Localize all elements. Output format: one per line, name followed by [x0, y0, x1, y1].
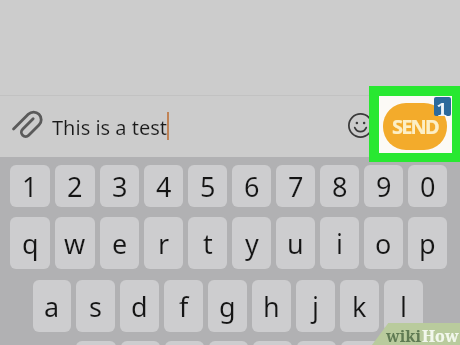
staticText: 0 — [420, 168, 436, 205]
staticText: y — [245, 225, 259, 262]
staticText: j — [312, 288, 319, 325]
staticText: 2 — [67, 168, 83, 205]
button[interactable]: c — [165, 341, 204, 345]
button[interactable]: 1 — [10, 165, 50, 207]
button[interactable]: 3 — [100, 165, 139, 207]
staticText: 9 — [376, 168, 392, 205]
button[interactable]: n — [297, 341, 336, 345]
staticText: w — [64, 225, 86, 262]
staticText: 7 — [288, 168, 304, 205]
button[interactable]: q — [10, 217, 50, 269]
button[interactable]: 8 — [320, 165, 359, 207]
button[interactable]: t — [188, 217, 227, 269]
button[interactable]: v — [209, 341, 248, 345]
staticText: 1 — [437, 97, 448, 116]
staticText: SEND — [392, 113, 438, 140]
staticText: s — [89, 288, 102, 325]
button[interactable]: x — [121, 341, 160, 345]
staticText: 5 — [200, 168, 216, 205]
staticText: This is a test — [52, 114, 168, 141]
button[interactable]: k — [340, 280, 379, 332]
button[interactable]: h — [252, 280, 291, 332]
button[interactable]: 5 — [188, 165, 227, 207]
staticText: 6 — [244, 168, 260, 205]
staticText: t — [203, 225, 213, 262]
staticText: 4 — [156, 168, 172, 205]
button[interactable]: o — [364, 217, 403, 269]
button[interactable]: f — [164, 280, 203, 332]
button[interactable]: g — [208, 280, 247, 332]
staticText: q — [22, 225, 39, 262]
staticText: 3 — [112, 168, 128, 205]
button[interactable]: l — [384, 280, 423, 332]
button[interactable]: 9 — [364, 165, 403, 207]
staticText: 8 — [332, 168, 348, 205]
button[interactable]: Attach file — [14, 108, 47, 141]
staticText: g — [219, 288, 236, 325]
button[interactable]: 7 — [276, 165, 315, 207]
button[interactable]: m — [341, 341, 380, 345]
staticText: f — [179, 288, 189, 325]
staticText: p — [419, 225, 436, 262]
button[interactable]: a — [33, 280, 71, 332]
button[interactable]: s — [76, 280, 115, 332]
button[interactable]: d — [120, 280, 159, 332]
staticText: l — [400, 288, 407, 325]
button[interactable]: b — [253, 341, 292, 345]
button[interactable]: u — [276, 217, 315, 269]
button[interactable]: SEND — [383, 103, 447, 150]
button[interactable]: 0 — [408, 165, 447, 207]
staticText: r — [158, 225, 170, 262]
button[interactable]: y — [232, 217, 271, 269]
staticText: i — [336, 225, 343, 262]
staticText: 1 — [22, 168, 38, 205]
button[interactable]: 2 — [55, 165, 95, 207]
button[interactable]: 6 — [232, 165, 271, 207]
staticText: o — [375, 225, 392, 262]
button[interactable]: p — [408, 217, 447, 269]
button[interactable]: r — [144, 217, 183, 269]
button[interactable]: i — [320, 217, 359, 269]
staticText: wiki — [386, 325, 422, 345]
button[interactable]: j — [296, 280, 335, 332]
staticText: How — [422, 325, 459, 345]
staticText: d — [131, 288, 148, 325]
staticText: a — [44, 288, 60, 325]
staticText: e — [112, 225, 128, 262]
staticText: h — [263, 288, 280, 325]
button[interactable]: e — [100, 217, 139, 269]
staticText: k — [352, 288, 367, 325]
button[interactable]: z — [76, 341, 116, 345]
staticText: u — [287, 225, 304, 262]
button[interactable]: 4 — [144, 165, 183, 207]
button[interactable]: w — [55, 217, 95, 269]
button[interactable]: Emoji — [344, 109, 376, 141]
